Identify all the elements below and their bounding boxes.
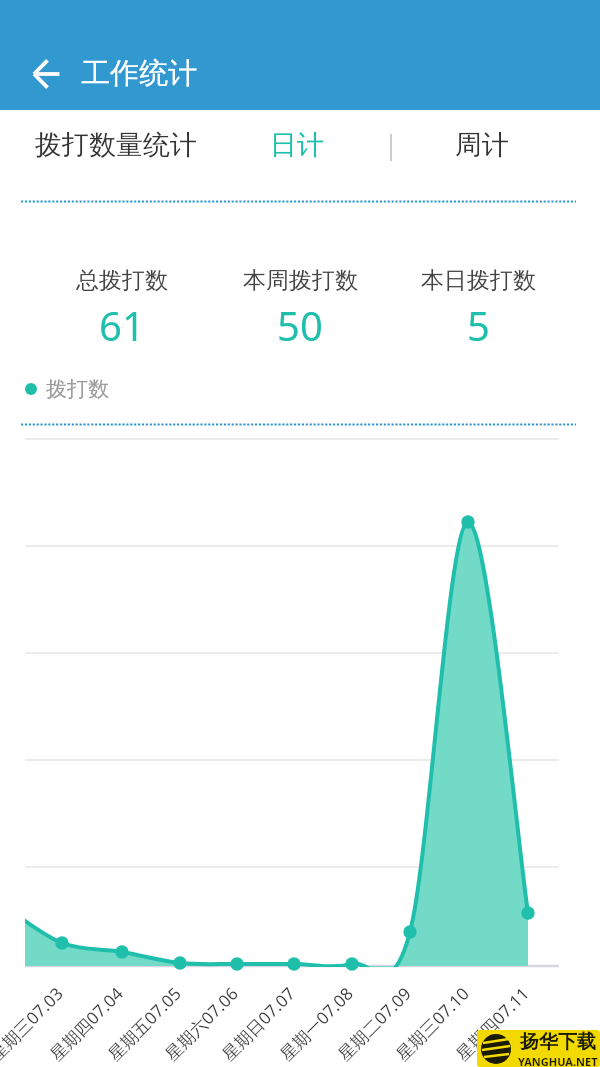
button[interactable]: 拨打数量统计 xyxy=(25,110,207,180)
staticText: 61 xyxy=(99,298,145,352)
button[interactable]: 日计 xyxy=(247,110,347,180)
button[interactable]: 本日拨打数 xyxy=(389,266,567,352)
staticText: 总拨打数 xyxy=(76,266,168,295)
staticText: 5 xyxy=(467,298,490,352)
staticText: 周计 xyxy=(455,128,509,162)
button[interactable]: 扬华下载 xyxy=(477,1030,600,1067)
staticText: 本周拨打数 xyxy=(243,266,358,295)
button[interactable] xyxy=(0,37,61,110)
staticText: 日计 xyxy=(270,128,324,162)
button[interactable]: 总拨打数 xyxy=(33,266,211,352)
button[interactable]: 本周拨打数 xyxy=(211,266,389,352)
staticText: YANGHUA.NET xyxy=(518,1054,598,1067)
staticText: 50 xyxy=(277,298,323,352)
staticText: 扬华下载 xyxy=(520,1030,596,1054)
staticText: 拨打数 xyxy=(46,376,109,402)
button[interactable]: 周计 xyxy=(432,110,532,180)
staticText: 拨打数量统计 xyxy=(35,128,197,162)
staticText: 本日拨打数 xyxy=(421,266,536,295)
staticText: 工作统计 xyxy=(81,55,197,92)
